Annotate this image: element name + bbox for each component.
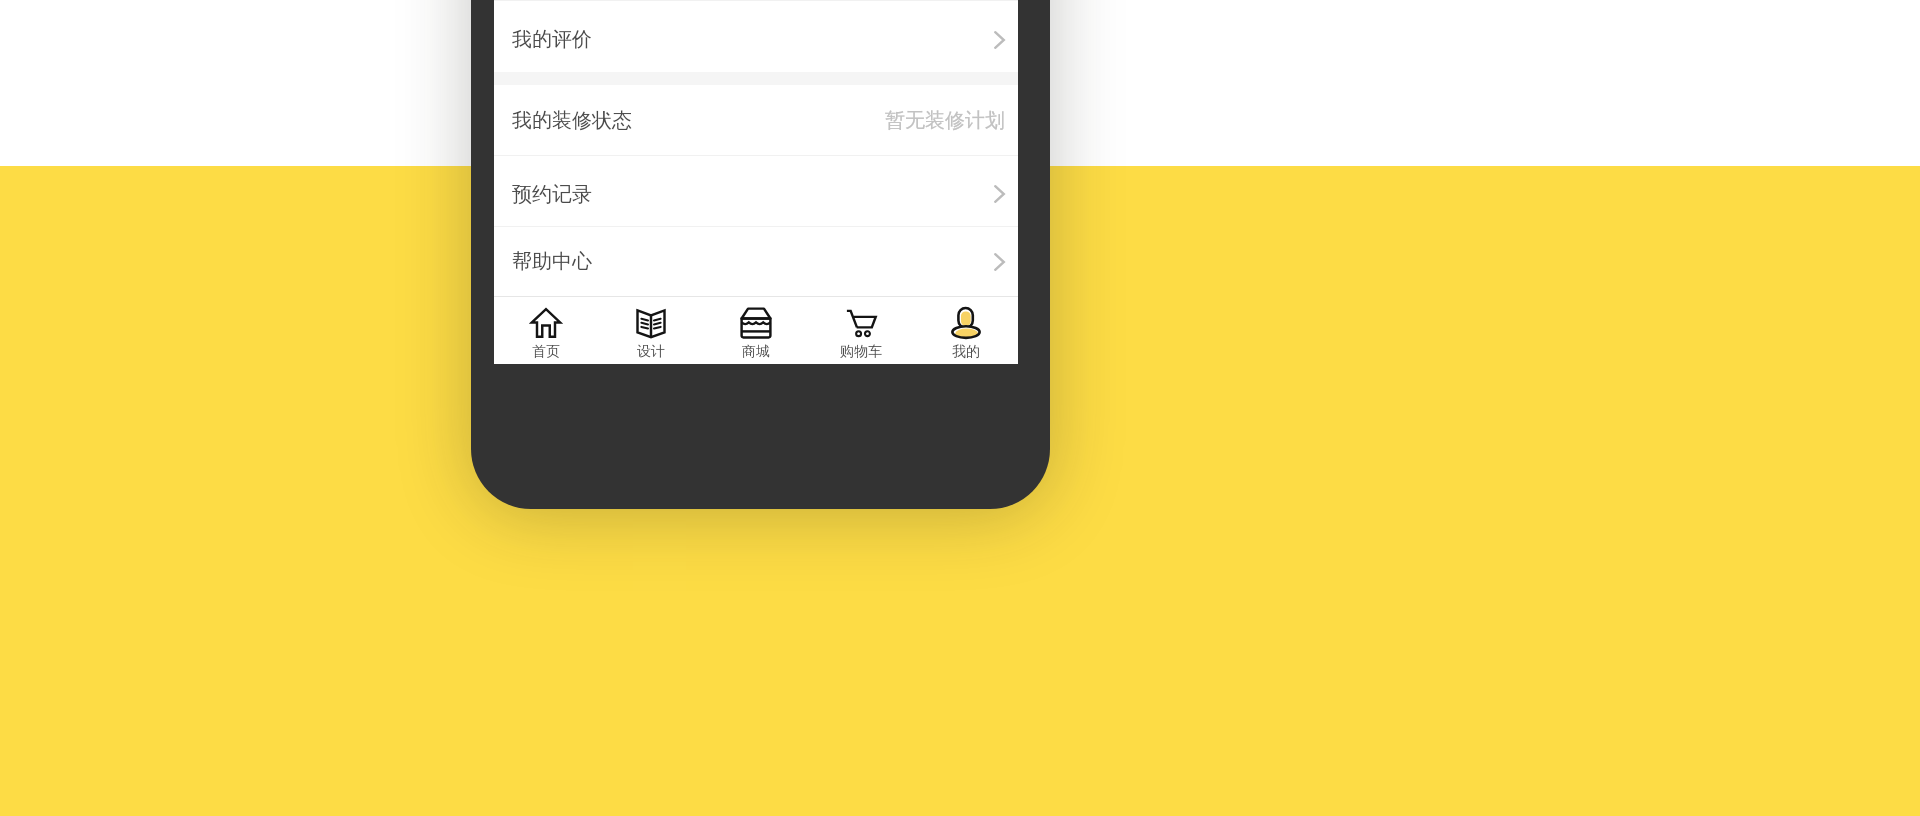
- staticText: 我的评价: [512, 27, 592, 52]
- button[interactable]: 购物车: [808, 297, 913, 364]
- staticText: 首页: [532, 343, 560, 361]
- staticText: 暂无装修计划: [885, 108, 1005, 133]
- staticText: 设计: [637, 343, 665, 361]
- staticText: 我的装修状态: [512, 108, 632, 133]
- button[interactable]: 帮助中心: [494, 227, 1018, 296]
- button[interactable]: 预约记录: [494, 156, 1018, 226]
- staticText: 购物车: [840, 343, 882, 361]
- button[interactable]: 商城: [703, 297, 808, 364]
- staticText: 商城: [742, 343, 770, 361]
- button[interactable]: 我的评价: [494, 1, 1018, 72]
- staticText: 预约记录: [512, 182, 592, 207]
- button[interactable]: 首页: [494, 297, 598, 364]
- button[interactable]: 我的装修状态: [494, 85, 1018, 155]
- staticText: 我的: [952, 343, 980, 361]
- staticText: 帮助中心: [512, 249, 592, 274]
- button[interactable]: 我的: [913, 297, 1018, 364]
- button[interactable]: 设计: [598, 297, 703, 364]
